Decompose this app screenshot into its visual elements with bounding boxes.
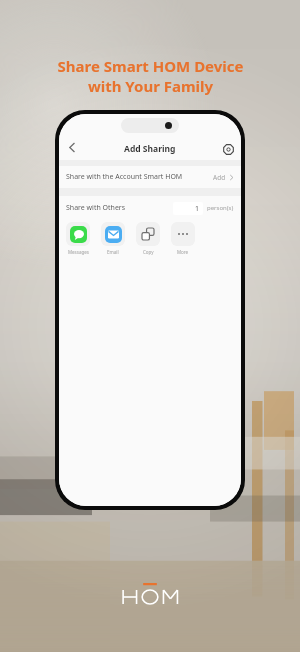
staticText: Share with the Account Smart HOM [66,172,183,182]
staticText: Messages [68,249,89,255]
staticText: Copy [143,249,154,255]
staticText: Share Smart HOM Device with Your Family [57,56,244,96]
staticText: Email [107,249,119,255]
staticText: 1 [195,204,200,214]
button[interactable]: 1 [173,202,203,215]
button[interactable]: Messages [66,222,90,255]
staticText: person(s) [207,204,234,212]
staticText: Add [213,173,226,182]
button[interactable]: Back [61,136,83,158]
button[interactable]: Copy [136,222,160,255]
button[interactable]: More [171,222,195,255]
staticText: More [177,249,189,255]
button[interactable]: Share with the Account Smart HOM [59,166,241,188]
staticText: Add Sharing [124,143,176,155]
button[interactable]: Email [101,222,125,255]
staticText: Share with Others [66,203,126,213]
button[interactable]: Settings [218,139,238,159]
